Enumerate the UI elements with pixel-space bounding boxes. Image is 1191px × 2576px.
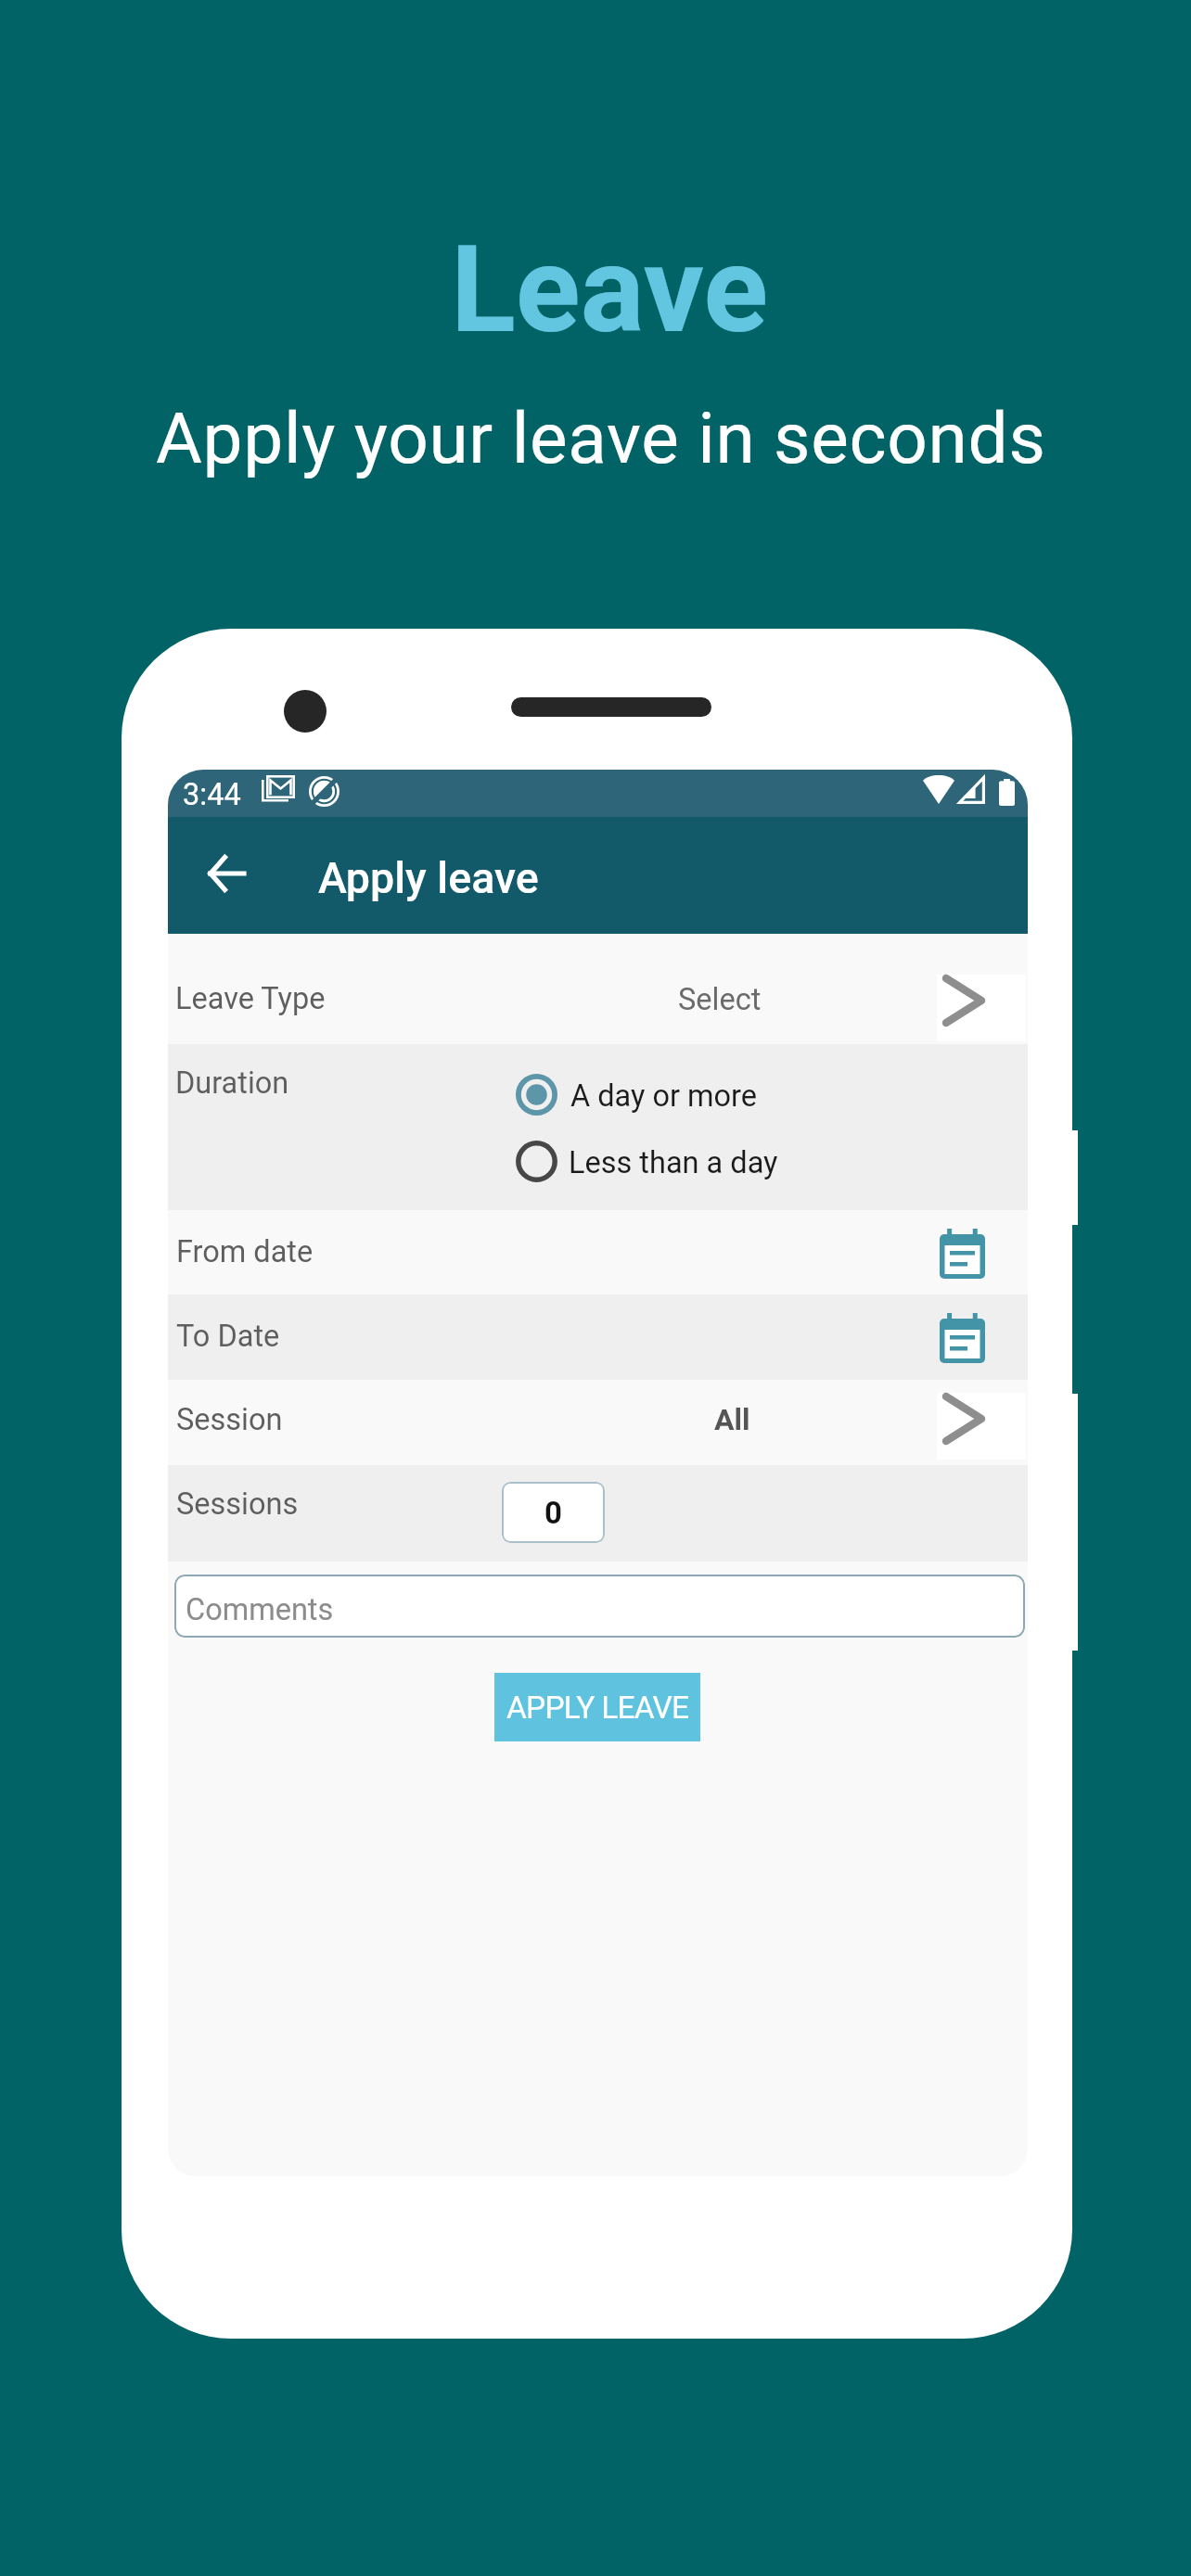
staticText: 0 — [544, 1495, 562, 1531]
staticText: A day or more — [570, 1078, 758, 1114]
staticText: Leave — [451, 220, 768, 360]
button[interactable]: Open list — [937, 1393, 1026, 1460]
button[interactable]: Leave Type — [168, 934, 1028, 1044]
staticText: Apply your leave in seconds — [156, 397, 1046, 480]
button[interactable]: Session — [168, 1380, 1028, 1465]
button[interactable]: A day or more — [510, 1068, 807, 1121]
staticText: Apply leave — [318, 853, 539, 903]
staticText: Comments — [186, 1592, 334, 1627]
button[interactable]: APPLY LEAVE — [494, 1673, 700, 1741]
button[interactable]: Less than a day — [510, 1135, 807, 1188]
staticText: APPLY LEAVE — [506, 1690, 689, 1726]
button[interactable]: Back — [188, 835, 264, 912]
button[interactable]: Comments — [174, 1575, 1025, 1638]
staticText: Sessions — [176, 1486, 299, 1522]
staticText: Duration — [175, 1065, 289, 1101]
button[interactable]: Pick date — [926, 1220, 991, 1285]
button[interactable]: To Date — [168, 1294, 1028, 1380]
staticText: All — [714, 1402, 750, 1437]
staticText: To Date — [176, 1319, 280, 1354]
button[interactable]: Pick date — [926, 1305, 991, 1370]
button[interactable]: Open list — [937, 975, 1026, 1041]
button[interactable]: From date — [168, 1210, 1028, 1295]
staticText: Session — [176, 1402, 283, 1437]
staticText: Leave Type — [175, 981, 326, 1016]
staticText: From date — [176, 1234, 314, 1269]
staticText: Select — [678, 982, 762, 1017]
button[interactable]: 0 — [502, 1482, 605, 1543]
staticText: 3:44 — [183, 777, 241, 812]
staticText: Less than a day — [569, 1145, 778, 1180]
